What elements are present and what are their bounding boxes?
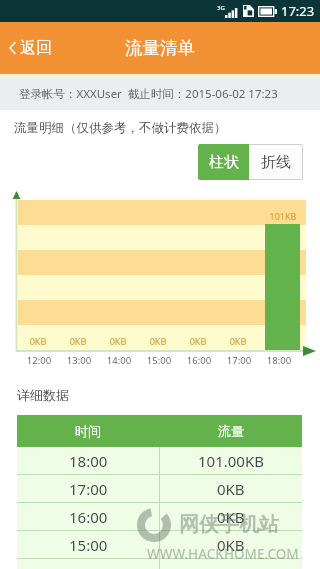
button[interactable]: 17:00 — [17, 475, 302, 503]
staticText: 流量清单 — [125, 37, 195, 59]
staticText: 3G — [217, 4, 225, 12]
staticText: 0KB — [218, 335, 258, 347]
staticText: 0KB — [98, 335, 138, 347]
staticText: 流量 — [218, 423, 244, 439]
staticText: 17:23 — [281, 2, 315, 20]
staticText: WWW.HACKHOME.COM — [147, 545, 299, 563]
button[interactable]: 16:00 — [17, 503, 302, 531]
staticText: 柱状 — [209, 153, 239, 172]
staticText: 15:00 — [69, 535, 108, 555]
staticText: 12:00 — [19, 354, 59, 367]
button[interactable]: 15:00 — [17, 531, 302, 559]
staticText: 0KB — [217, 479, 245, 499]
staticText: 0KB — [138, 335, 178, 347]
staticText: 17:00 — [69, 479, 108, 499]
staticText: 18:00 — [69, 451, 108, 471]
staticText: 16:00 — [69, 507, 108, 527]
staticText: 0KB — [58, 335, 98, 347]
staticText: 详细数据 — [17, 387, 69, 403]
staticText: 0KB — [217, 507, 245, 527]
staticText: 16:00 — [179, 354, 219, 367]
staticText: 14:00 — [99, 354, 139, 367]
staticText: 流量明细（仅供参考，不做计费依据） — [14, 120, 227, 136]
staticText: 登录帐号：XXXUser 截止时间：2015-06-02 17:23 — [19, 86, 278, 102]
staticText: 时间 — [75, 423, 101, 439]
staticText: 17:00 — [219, 354, 259, 367]
staticText: 101KB — [262, 210, 304, 222]
staticText: 13:00 — [59, 354, 99, 367]
staticText: 0KB — [18, 335, 58, 347]
staticText: 0KB — [217, 535, 245, 555]
button[interactable]: 18:00 — [17, 447, 302, 475]
staticText: 返回 — [20, 38, 52, 58]
staticText: 网侠手机站 — [179, 512, 279, 537]
button[interactable]: 14:00 — [17, 559, 302, 569]
staticText: 15:00 — [139, 354, 179, 367]
staticText: 0KB — [178, 335, 218, 347]
staticText: 折线 — [261, 153, 291, 172]
button[interactable]: 柱状 — [198, 144, 249, 180]
staticText: 18:00 — [259, 354, 299, 367]
staticText: 101.00KB — [198, 451, 264, 471]
button[interactable]: 返回 — [0, 30, 68, 66]
button[interactable]: 折线 — [249, 145, 302, 179]
